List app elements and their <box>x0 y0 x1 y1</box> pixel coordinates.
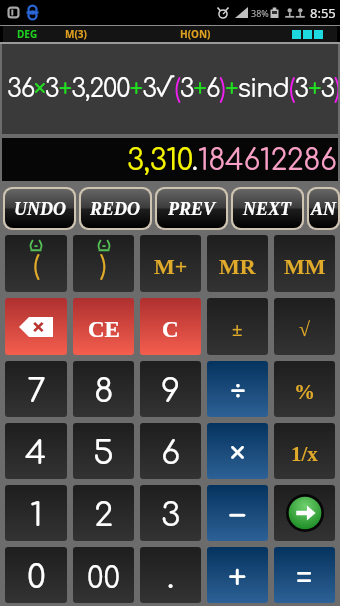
staticText: 36×3+3,200+3√(3+6)+sind(3+3) <box>7 75 338 103</box>
staticText: CE <box>88 317 120 342</box>
staticText: = <box>296 560 313 596</box>
staticText: NEXT <box>243 199 292 219</box>
staticText: MR <box>219 254 256 278</box>
button[interactable]: √ <box>274 298 335 355</box>
staticText: ÷ <box>230 373 246 411</box>
button[interactable]: 1 <box>5 485 67 541</box>
staticText: 6 <box>161 435 181 472</box>
button[interactable]: M+ <box>140 235 201 292</box>
button[interactable]: CE <box>73 298 134 355</box>
button[interactable]: ( <box>5 235 67 292</box>
button[interactable]: 9 <box>140 361 201 417</box>
button[interactable]: AN <box>309 189 338 228</box>
button[interactable]: 0 <box>5 547 67 603</box>
button[interactable]: ± <box>207 298 268 355</box>
staticText: 1 <box>30 497 43 534</box>
button[interactable]: 1/x <box>274 423 335 479</box>
other: Enter <box>286 494 324 532</box>
staticText: M(3) <box>65 27 87 41</box>
staticText: 2 <box>94 497 114 534</box>
button[interactable]: = <box>274 547 335 603</box>
staticText: . <box>167 559 175 596</box>
button[interactable]: 8 <box>73 361 134 417</box>
staticText: 5 <box>93 435 114 472</box>
staticText: % <box>294 380 315 403</box>
button[interactable]: Enter <box>274 485 335 541</box>
staticText: − <box>228 497 247 535</box>
staticText: 3 <box>161 497 181 534</box>
button[interactable]: C <box>140 298 201 355</box>
button[interactable]: 5 <box>73 423 134 479</box>
button[interactable]: 3 <box>140 485 201 541</box>
staticText: 7 <box>27 373 46 410</box>
staticText: ± <box>232 319 243 340</box>
staticText: C <box>162 317 179 342</box>
button[interactable]: NEXT <box>233 189 302 228</box>
staticText: MM <box>284 254 326 278</box>
button[interactable]: − <box>207 485 268 541</box>
button[interactable]: 4 <box>5 423 67 479</box>
staticText: 8 <box>94 373 114 410</box>
button[interactable]: 6 <box>140 423 201 479</box>
staticText: DEG <box>17 27 38 41</box>
button[interactable]: 00 <box>73 547 134 603</box>
button[interactable]: + <box>207 547 268 603</box>
button[interactable]: ÷ <box>207 361 268 417</box>
button[interactable]: . <box>140 547 201 603</box>
staticText: 9 <box>161 373 181 410</box>
button[interactable]: 7 <box>5 361 67 417</box>
staticText: 4 <box>25 435 47 472</box>
staticText: ( <box>33 251 40 280</box>
button[interactable]: REDO <box>81 189 150 228</box>
button[interactable]: 2 <box>73 485 134 541</box>
staticText: M+ <box>154 254 188 278</box>
staticText: √ <box>299 318 310 340</box>
staticText: H(ON) <box>180 27 211 41</box>
button[interactable]: ) <box>73 235 134 292</box>
staticText: + <box>228 559 247 597</box>
staticText: ) <box>100 251 107 280</box>
staticText: 0 <box>27 559 46 596</box>
button[interactable]: MR <box>207 235 268 292</box>
button[interactable]: × <box>207 423 268 479</box>
staticText: × <box>230 436 246 472</box>
staticText: PREV <box>168 199 216 219</box>
staticText: 3,310.184612286 <box>127 144 337 176</box>
staticText: UNDO <box>14 199 66 219</box>
staticText: AN <box>311 199 337 219</box>
staticText: 1/x <box>291 442 318 465</box>
button[interactable]: % <box>274 361 335 417</box>
staticText: REDO <box>90 199 141 219</box>
button[interactable]: MM <box>274 235 335 292</box>
other: Backspace <box>19 317 53 337</box>
staticText: 38% <box>251 7 269 19</box>
staticText: 00 <box>87 562 121 594</box>
button[interactable]: UNDO <box>5 189 74 228</box>
button[interactable]: PREV <box>157 189 226 228</box>
staticText: 8:55 <box>310 4 336 22</box>
button[interactable]: Backspace <box>5 298 67 355</box>
